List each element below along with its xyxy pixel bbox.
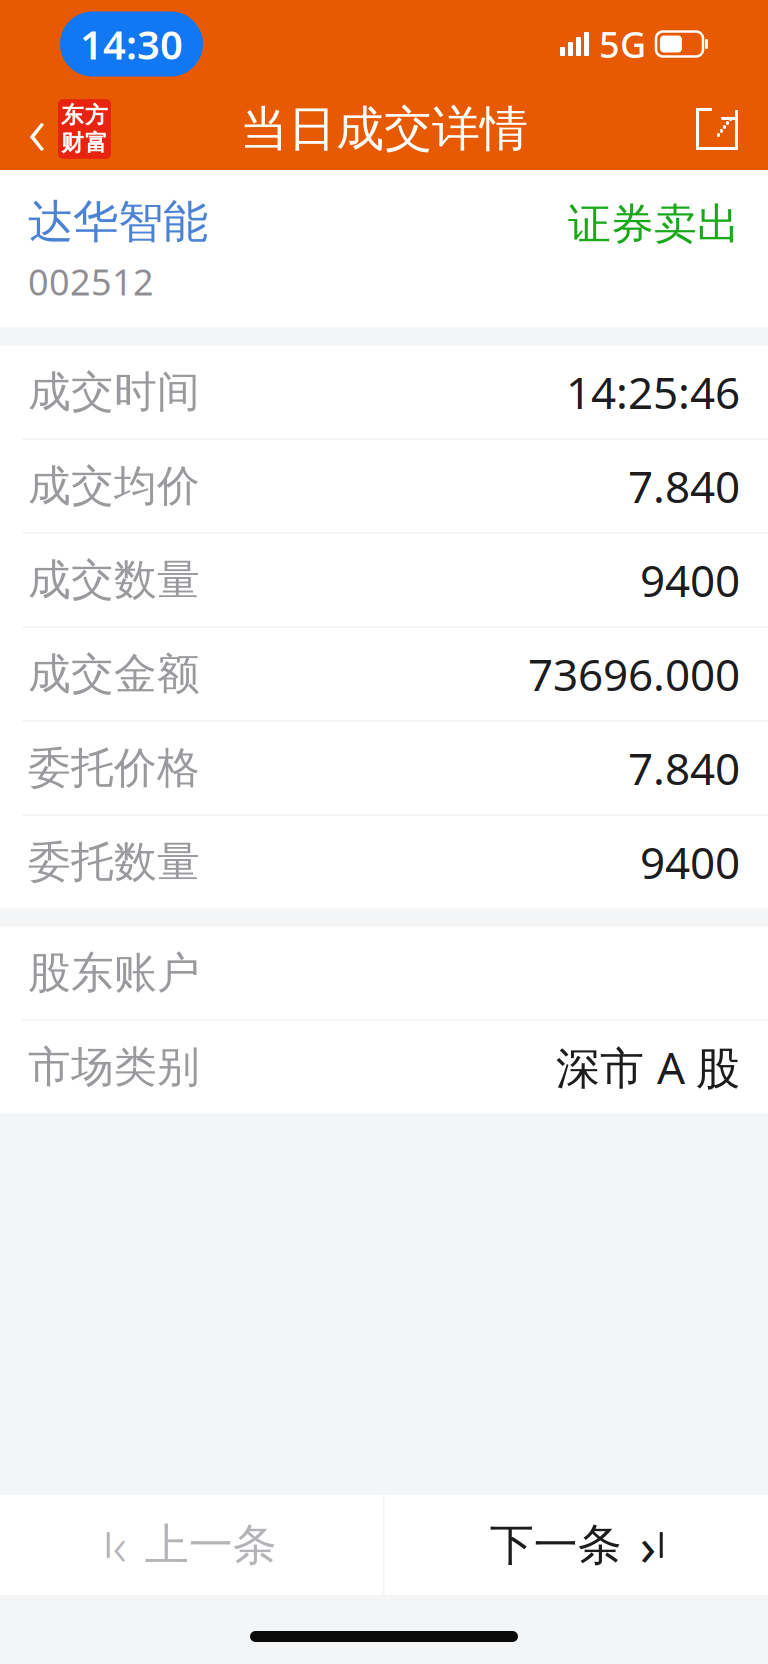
staticText: 股东账户 xyxy=(28,947,200,999)
staticText: 达华智能 xyxy=(28,194,208,250)
staticText: ‹ xyxy=(28,83,46,175)
staticText: 方 xyxy=(85,101,108,129)
staticText: 7.840 xyxy=(628,739,740,797)
staticText: 下一条 xyxy=(490,1518,622,1572)
staticText: 富 xyxy=(85,129,108,157)
staticText: 成交时间 xyxy=(28,366,200,418)
staticText: 市场类别 xyxy=(28,1041,200,1093)
staticText: 14:30 xyxy=(80,17,183,70)
button[interactable]: Share xyxy=(678,91,756,167)
staticText: 73696.000 xyxy=(528,645,740,703)
staticText: 成交数量 xyxy=(28,554,200,606)
staticText: 上一条 xyxy=(145,1518,277,1572)
staticText: 成交金额 xyxy=(28,648,200,700)
staticText: 成交均价 xyxy=(28,460,200,512)
staticText: 9400 xyxy=(640,833,740,891)
staticText: 证券卖出 xyxy=(568,198,740,250)
staticText: 深市 A 股 xyxy=(556,1038,740,1096)
button[interactable]: Back xyxy=(12,91,127,167)
button[interactable]: 下一条 xyxy=(384,1495,768,1595)
staticText: 5G xyxy=(599,20,646,68)
staticText: › xyxy=(640,1510,657,1580)
staticText: 002512 xyxy=(28,258,154,305)
staticText: 9400 xyxy=(640,551,740,609)
staticText: 当日成交详情 xyxy=(240,99,528,158)
staticText: 14:25:46 xyxy=(566,363,740,421)
staticText: 委托数量 xyxy=(28,836,200,888)
staticText: 委托价格 xyxy=(28,742,200,794)
staticText: 东 xyxy=(61,101,84,129)
staticText: 财 xyxy=(61,129,84,157)
button[interactable]: ‹ xyxy=(0,1495,383,1595)
staticText: 7.840 xyxy=(628,457,740,515)
staticText: ‹ xyxy=(113,1510,127,1580)
